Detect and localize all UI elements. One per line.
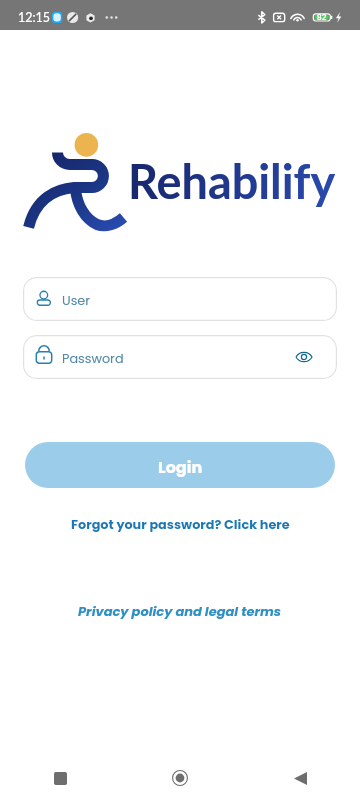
staticText: User (62, 292, 91, 310)
staticText: Forgot your password? Click here (71, 516, 290, 534)
button[interactable]: Forgot your password? Click here (71, 516, 290, 534)
staticText: 82 (317, 12, 327, 22)
button[interactable]: Login (25, 442, 335, 488)
button[interactable]: Back (240, 756, 360, 800)
button[interactable]: Recent apps (0, 756, 120, 800)
staticText: Login (158, 456, 203, 478)
button[interactable]: User (23, 277, 337, 321)
staticText: Rehabilify (128, 153, 336, 209)
staticText: Password (62, 350, 124, 368)
button[interactable]: Privacy policy and legal terms (78, 602, 282, 620)
button[interactable]: Password (23, 335, 337, 379)
staticText: 12:15 (18, 10, 51, 25)
button[interactable]: Home (120, 756, 240, 800)
staticText: Privacy policy and legal terms (78, 602, 282, 620)
